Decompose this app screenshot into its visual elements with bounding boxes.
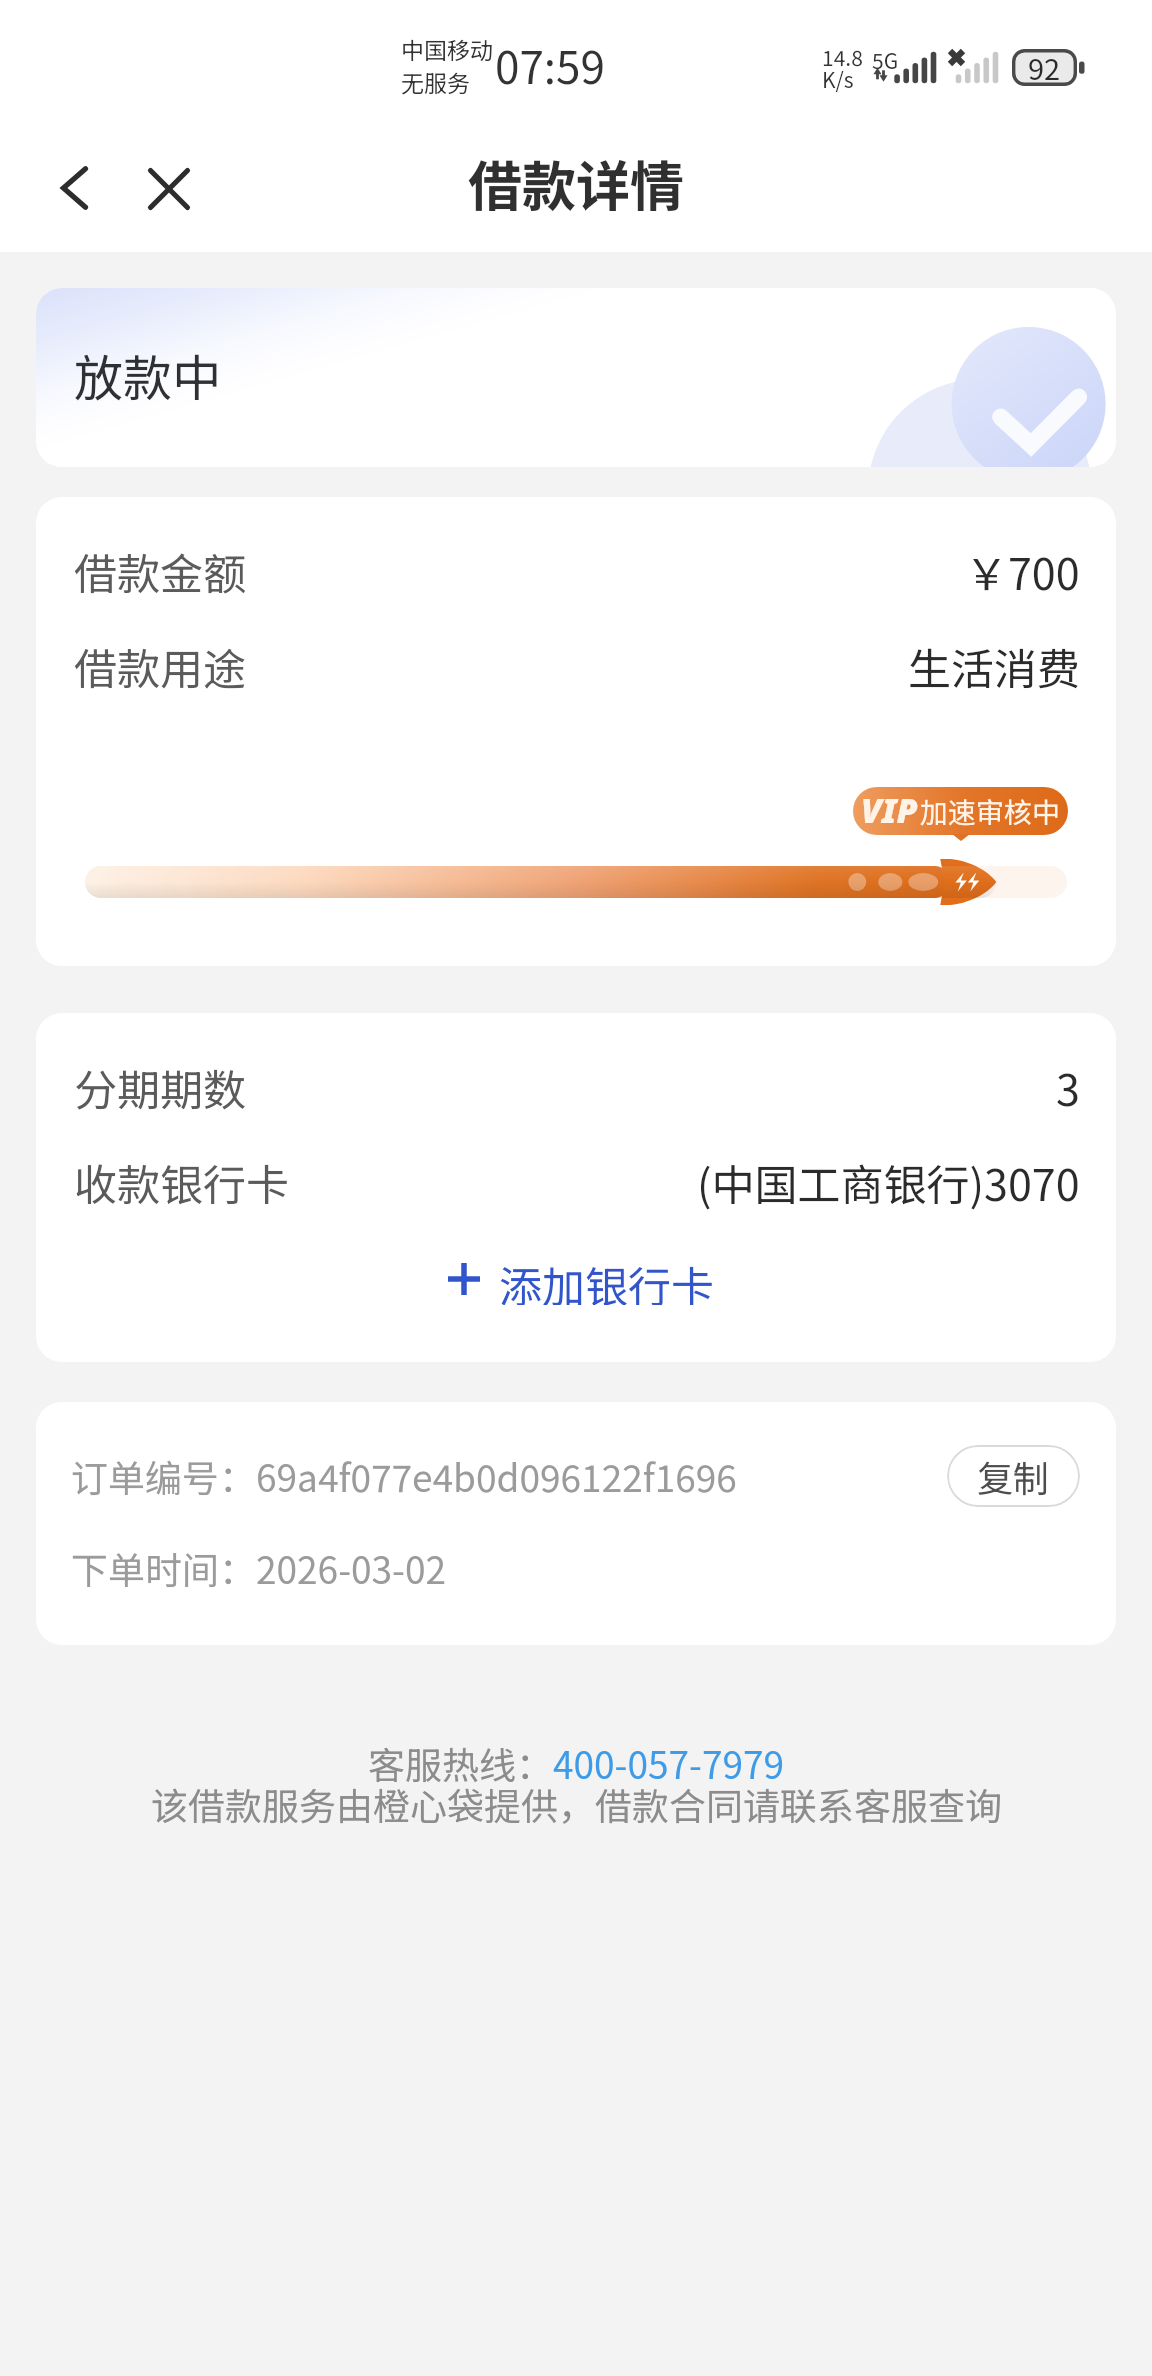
button[interactable]: 400-057-7979 — [553, 1736, 785, 1790]
staticText: 5G — [872, 45, 899, 75]
staticText: VIP — [861, 787, 918, 833]
staticText: 借款详情 — [468, 143, 684, 221]
staticText: 复制 — [977, 1450, 1050, 1502]
staticText: 加速审核中 — [920, 791, 1061, 832]
staticText: (中国工商银行)3070 — [697, 1151, 1080, 1213]
staticText: 借款用途 — [74, 635, 246, 697]
staticText: 收款银行卡 — [74, 1151, 289, 1213]
staticText: 14.8 K/s — [822, 42, 863, 94]
button[interactable]: 复制 — [947, 1445, 1080, 1507]
staticText: 借款金额 — [74, 540, 246, 602]
staticText: 该借款服务由橙心袋提供，借款合同请联系客服查询 — [151, 1777, 1002, 1831]
staticText: 添加银行卡 — [499, 1253, 714, 1305]
button[interactable]: Close — [119, 139, 219, 239]
staticText: 92 — [1028, 46, 1061, 83]
staticText: 订单编号：69a4f077e4b0d096122f1696 — [71, 1449, 737, 1503]
staticText: 07:59 — [495, 33, 605, 97]
staticText: 分期期数 — [74, 1056, 246, 1118]
staticText: 客服热线： — [368, 1736, 553, 1790]
button[interactable]: Back — [24, 138, 124, 238]
staticText: 放款中 — [74, 339, 222, 410]
button[interactable]: 添加银行卡 — [428, 1239, 734, 1319]
staticText: 生活消费 — [908, 635, 1080, 697]
staticText: 3 — [1056, 1056, 1080, 1118]
staticText: 中国移动 无服务 — [401, 32, 493, 99]
staticText: ￥700 — [965, 540, 1080, 602]
staticText: 下单时间：2026-03-02 — [71, 1541, 446, 1595]
